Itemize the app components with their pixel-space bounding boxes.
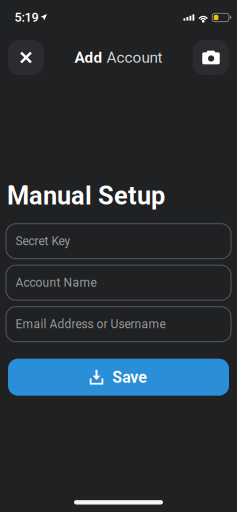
staticText: Secret Key [15,234,70,248]
button[interactable]: Scan QR code with camera [193,40,229,75]
button[interactable]: Email Address or Username [6,307,231,342]
staticText: Save [112,368,147,387]
staticText: 5:19 [14,10,38,25]
staticText: Email Address or Username [15,317,165,331]
button[interactable]: Secret Key [6,224,231,259]
staticText: Add [74,48,106,66]
button[interactable]: Close [8,40,44,75]
button[interactable]: Account Name [6,265,231,300]
staticText: Account [106,48,162,66]
button[interactable]: Save [8,359,229,396]
staticText: Account Name [15,276,96,290]
staticText: Manual Setup [7,181,165,211]
